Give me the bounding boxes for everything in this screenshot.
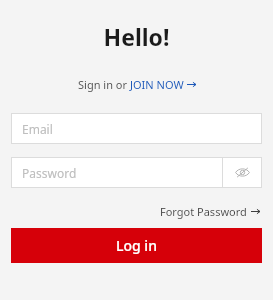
staticText: JOIN NOW: [130, 77, 184, 92]
staticText: Hello!: [0, 21, 273, 52]
button[interactable]: Password: [11, 157, 222, 188]
button[interactable]: JOIN NOW: [130, 77, 196, 92]
staticText: Sign in or: [78, 77, 130, 92]
staticText: Email: [22, 121, 53, 137]
staticText: Log in: [116, 236, 157, 255]
button[interactable]: Email: [11, 113, 262, 144]
staticText: Password: [22, 165, 77, 181]
staticText: Forgot Password: [160, 204, 247, 219]
button[interactable]: Forgot Password: [158, 202, 262, 221]
button[interactable]: Show password: [223, 157, 262, 188]
button[interactable]: Log in: [11, 228, 262, 263]
